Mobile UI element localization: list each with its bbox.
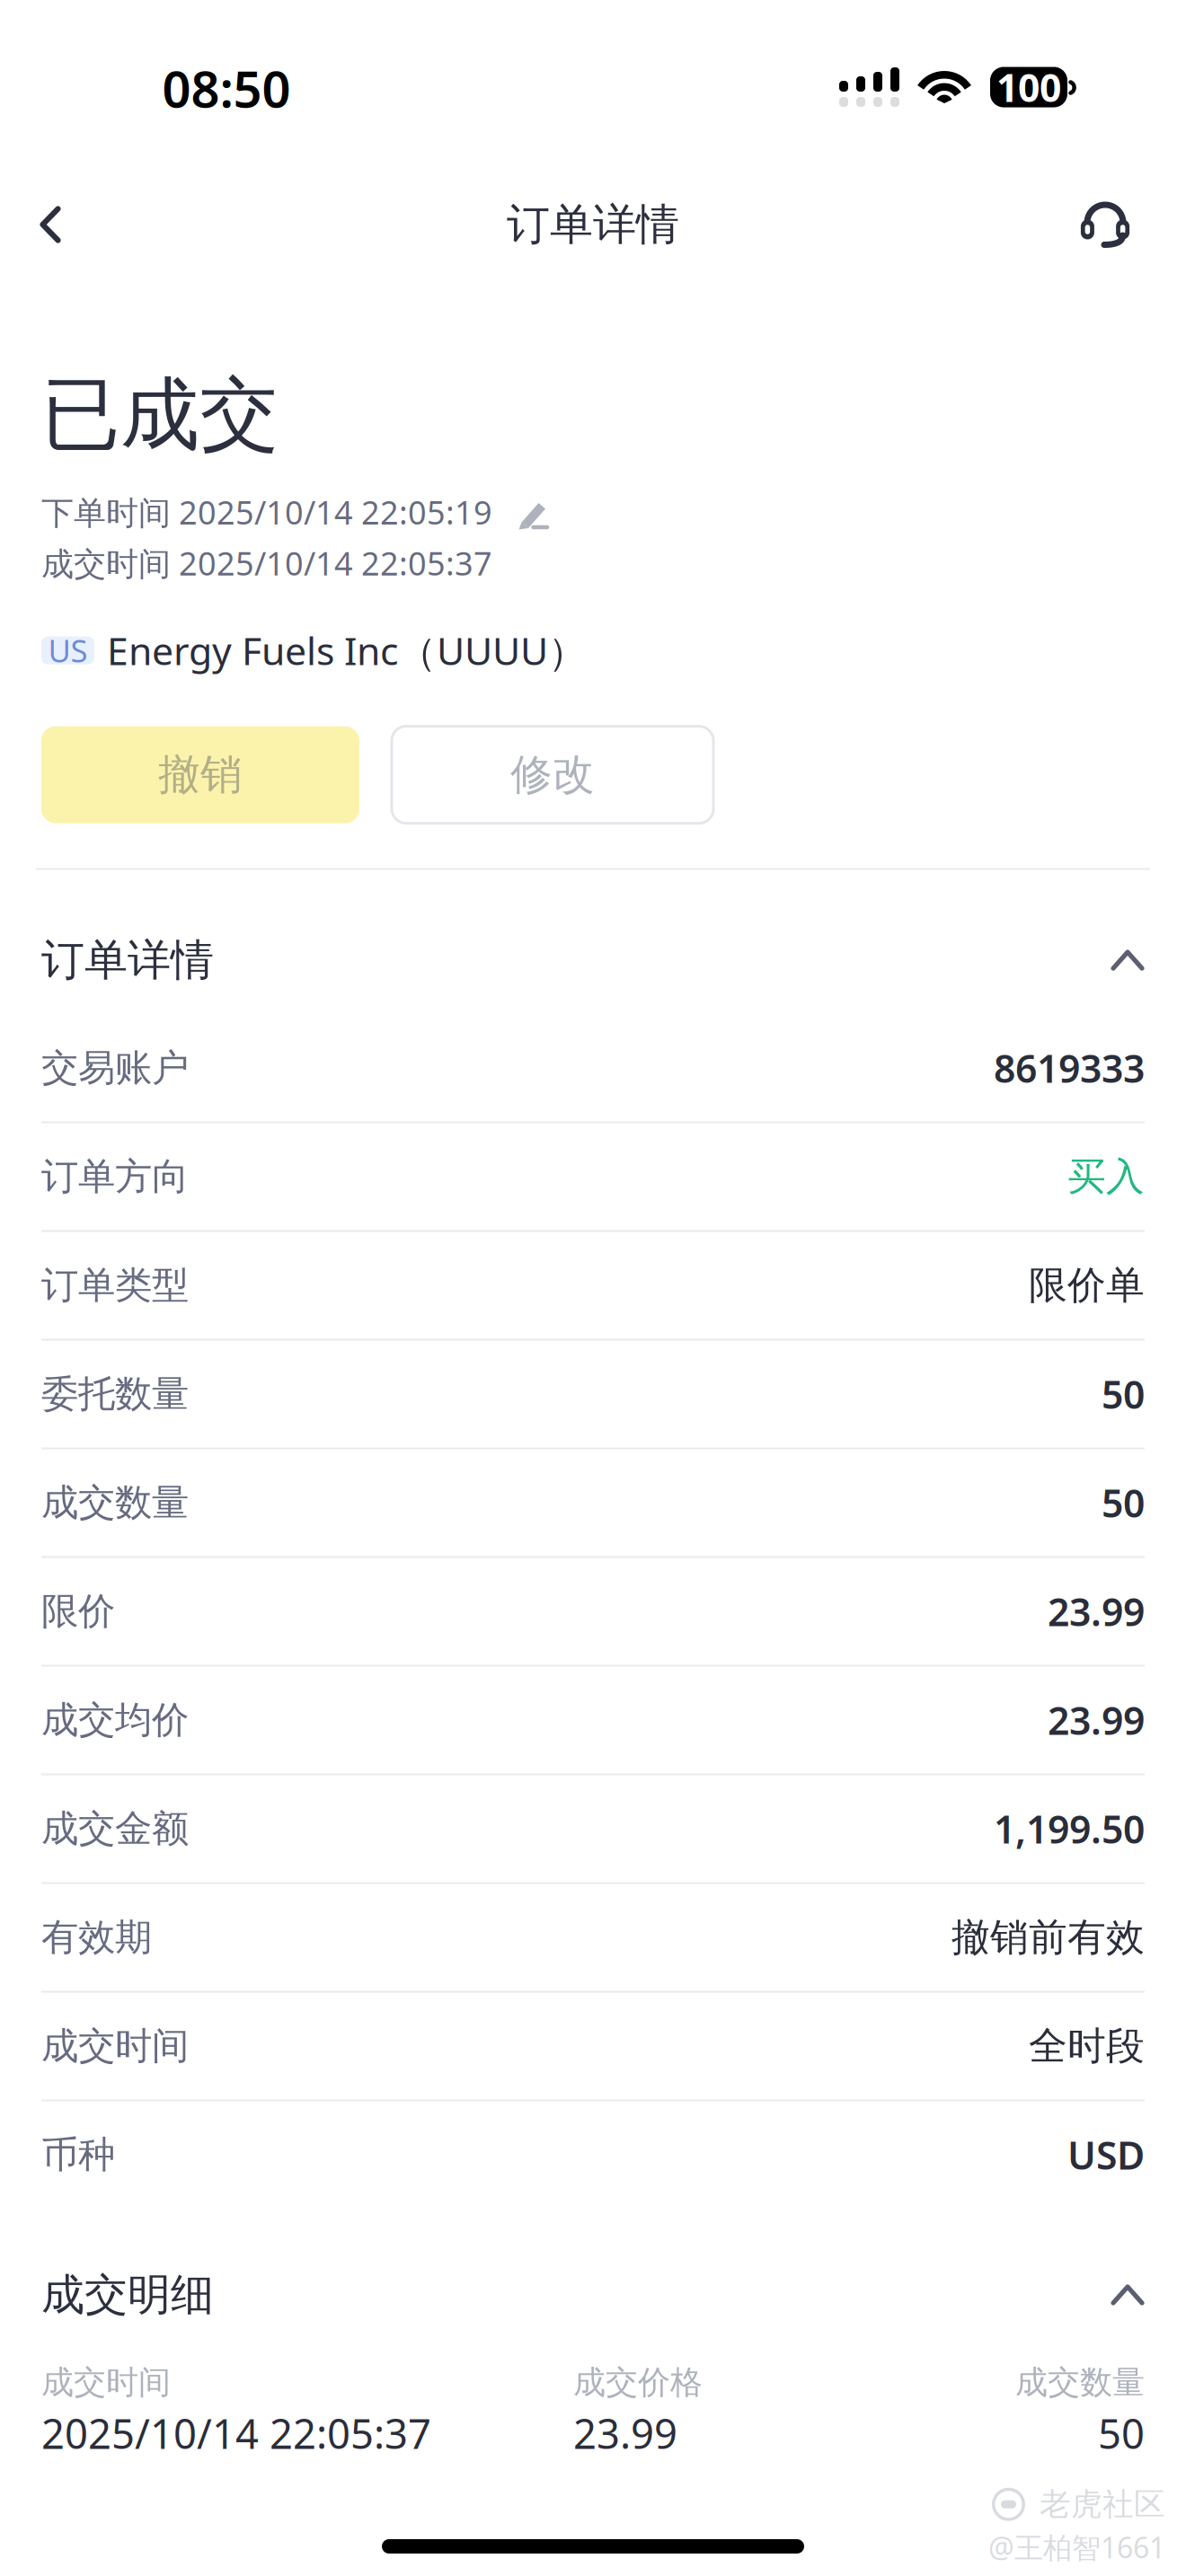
button[interactable]: 订单详情 [0,870,1186,1015]
staticText: 订单详情 [41,934,214,987]
staticText: 23.99 [1048,1586,1145,1637]
staticText: 100 [996,62,1061,113]
staticText: 订单方向 [41,1154,189,1200]
staticText: 委托数量 [41,1371,189,1417]
staticText: 已成交 [41,366,279,464]
staticText: 撤销 [158,749,243,800]
staticText: 限价单 [1029,1262,1145,1309]
staticText: USD [1067,2129,1145,2180]
staticText: 1,199.50 [994,1803,1145,1854]
staticText: 下单时间 2025/10/14 22:05:19 [41,490,492,533]
button[interactable]: Edit order time [516,495,550,529]
staticText: 08:50 [162,55,291,121]
staticText: 币种 [41,2132,115,2178]
staticText: 成交时间 2025/10/14 22:05:37 [41,542,492,584]
staticText: 50 [1102,1369,1145,1419]
staticText: 成交明细 [41,2268,214,2321]
staticText: 8619333 [994,1043,1145,1093]
button[interactable]: Customer service [1060,176,1150,273]
staticText: 成交时间 [41,2363,171,2402]
staticText: 有效期 [41,1915,152,1960]
staticText: 订单类型 [41,1263,189,1308]
staticText: 50 [1102,1477,1145,1528]
staticText: 限价 [41,1589,115,1634]
staticText: 成交均价 [41,1697,189,1743]
staticText: 23.99 [573,2406,677,2460]
staticText: 50 [1098,2406,1145,2460]
staticText: 23.99 [1048,1695,1145,1746]
staticText: 老虎社区 [1040,2485,1165,2523]
button[interactable]: 成交明细 [0,2208,1186,2363]
staticText: 撤销前有效 [951,1914,1145,1961]
staticText: Energy Fuels Inc（UUUU） [107,625,587,676]
staticText: 成交价格 [573,2363,703,2402]
staticText: 订单详情 [507,198,679,251]
button[interactable]: 修改 [392,726,713,823]
button[interactable]: Back [8,176,93,273]
staticText: @王柏智1661 [988,2528,1165,2566]
staticText: 全时段 [1029,2023,1145,2070]
staticText: 成交数量 [41,1480,189,1526]
staticText: 买入 [1067,1153,1145,1200]
staticText: 修改 [510,749,595,800]
staticText: 交易账户 [41,1045,189,1091]
staticText: 2025/10/14 22:05:37 [41,2406,431,2460]
button[interactable]: 撤销 [41,726,359,823]
staticText: US [48,630,88,671]
staticText: 成交金额 [41,1806,189,1852]
staticText: 成交数量 [1015,2363,1145,2402]
staticText: 成交时间 [41,2023,189,2069]
